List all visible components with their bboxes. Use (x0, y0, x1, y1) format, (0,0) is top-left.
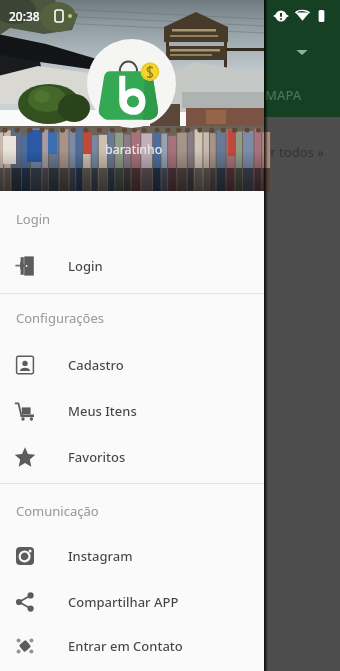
staticText: Favoritos (68, 448, 126, 466)
button[interactable]: Entrar em Contato (0, 623, 264, 669)
button[interactable]: Instagram (0, 533, 264, 579)
staticText: Compartilhar APP (68, 593, 179, 611)
staticText: Comunicação (16, 502, 99, 520)
button[interactable]: Cadastro (0, 342, 264, 388)
button[interactable]: Login (0, 243, 264, 289)
staticText: Entrar em Contato (68, 637, 183, 655)
staticText: Cadastro (68, 356, 124, 374)
button[interactable]: Favoritos (0, 434, 264, 480)
staticText: Login (16, 210, 51, 228)
staticText: er todos » (263, 143, 324, 161)
staticText: Login (68, 257, 103, 275)
button[interactable]: Meus Itens (0, 388, 264, 434)
button[interactable]: Compartilhar APP (0, 579, 264, 625)
staticText: baratinho (105, 141, 163, 158)
staticText: MAPA (265, 86, 302, 104)
staticText: Instagram (68, 547, 133, 565)
staticText: Configurações (16, 309, 105, 327)
staticText: 20:38 (9, 8, 40, 24)
staticText: Meus Itens (68, 402, 137, 420)
